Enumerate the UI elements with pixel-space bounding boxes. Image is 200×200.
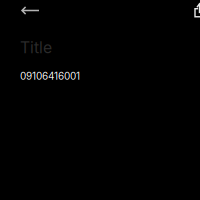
button[interactable]: Back (0, 0, 49, 22)
staticText: 09106416001 (20, 70, 80, 82)
button[interactable]: Share (181, 0, 200, 22)
staticText: Title (20, 38, 52, 57)
